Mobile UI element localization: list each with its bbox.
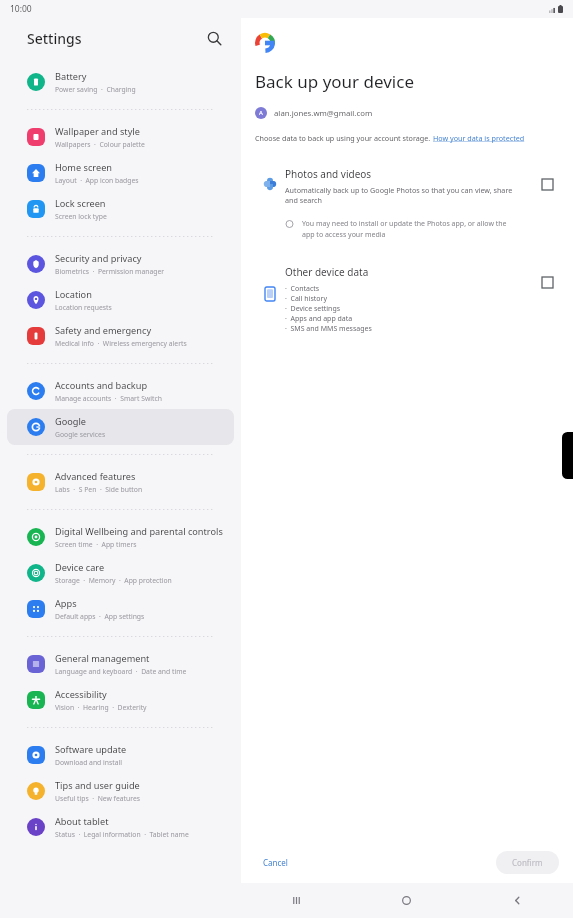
staticText: Choose data to back up using your accoun…	[255, 133, 433, 143]
staticText: Default apps · App settings	[55, 612, 145, 621]
staticText: Automatically back up to Google Photos s…	[285, 185, 525, 205]
button[interactable]: Lock screen	[7, 191, 234, 227]
staticText: Google	[55, 415, 87, 428]
button[interactable]: Confirm	[496, 851, 559, 874]
button[interactable]: General management	[7, 646, 234, 682]
button[interactable]: Google	[7, 409, 234, 445]
staticText: Location	[55, 288, 92, 301]
staticText: Digital Wellbeing and parental controls	[55, 525, 223, 538]
staticText: Screen lock type	[55, 212, 107, 221]
staticText: Biometrics · Permission manager	[55, 267, 165, 276]
staticText: Home screen	[55, 161, 112, 174]
staticText: Medical info · Wireless emergency alerts	[55, 339, 187, 348]
button[interactable]: Checkbox	[535, 270, 559, 294]
staticText: Manage accounts · Smart Switch	[55, 394, 162, 403]
staticText: · Call history	[285, 294, 328, 304]
staticText: Battery	[55, 70, 87, 83]
staticText: A	[259, 109, 263, 117]
button[interactable]: Recents	[241, 883, 351, 918]
staticText: Accounts and backup	[55, 379, 148, 392]
staticText: 10:00	[10, 3, 32, 15]
staticText: Software update	[55, 743, 127, 756]
staticText: Security and privacy	[55, 252, 142, 265]
button[interactable]: Checkbox	[535, 172, 559, 196]
staticText: Accessibility	[55, 688, 107, 701]
staticText: Settings	[27, 29, 82, 48]
staticText: Other device data	[285, 265, 369, 279]
staticText: Wallpapers · Colour palette	[55, 140, 145, 149]
staticText: · SMS and MMS messages	[285, 324, 372, 334]
staticText: alan.jones.wm@gmail.com	[274, 108, 373, 119]
button[interactable]: Advanced features	[7, 464, 234, 500]
staticText: Useful tips · New features	[55, 794, 141, 803]
staticText: Download and install	[55, 758, 123, 767]
staticText: Labs · S Pen · Side button	[55, 485, 143, 494]
staticText: Device care	[55, 561, 105, 574]
button[interactable]: Safety and emergency	[7, 318, 234, 354]
staticText: About tablet	[55, 815, 109, 828]
staticText: · Contacts	[285, 284, 320, 294]
staticText: Vision · Hearing · Dexterity	[55, 703, 147, 712]
button[interactable]: Battery	[7, 64, 234, 100]
button[interactable]: Search	[201, 25, 227, 51]
staticText: Screen time · App timers	[55, 540, 137, 549]
staticText: Back up your device	[255, 70, 415, 93]
staticText: Location requests	[55, 303, 112, 312]
button[interactable]: Wallpaper and style	[7, 119, 234, 155]
staticText: Wallpaper and style	[55, 125, 140, 138]
button[interactable]: Tips and user guide	[7, 773, 234, 809]
staticText: · Apps and app data	[285, 314, 353, 324]
staticText: Photos and videos	[285, 167, 372, 181]
button[interactable]: Digital Wellbeing and parental controls	[7, 519, 234, 555]
button[interactable]: Accounts and backup	[7, 373, 234, 409]
staticText: · Device settings	[285, 304, 341, 314]
staticText: Google services	[55, 430, 106, 439]
button[interactable]: Security and privacy	[7, 246, 234, 282]
button[interactable]: Back	[462, 883, 573, 918]
staticText: Cancel	[263, 857, 288, 868]
button[interactable]: Apps	[7, 591, 234, 627]
button[interactable]: Location	[7, 282, 234, 318]
staticText: Storage · Memory · App protection	[55, 576, 172, 585]
staticText: Advanced features	[55, 470, 136, 483]
staticText: Language and keyboard · Date and time	[55, 667, 187, 676]
staticText: General management	[55, 652, 150, 665]
staticText: Confirm	[512, 857, 543, 868]
staticText: Power saving · Charging	[55, 85, 136, 94]
staticText: Layout · App icon badges	[55, 176, 139, 185]
staticText: Status · Legal information · Tablet name	[55, 830, 189, 839]
button[interactable]: About tablet	[7, 809, 234, 845]
button[interactable]: How your data is protected	[433, 133, 525, 143]
button[interactable]: Software update	[7, 737, 234, 773]
button[interactable]: Cancel	[253, 852, 298, 873]
staticText: You may need to install or update the Ph…	[302, 219, 513, 239]
staticText: Apps	[55, 597, 77, 610]
button[interactable]: Accessibility	[7, 682, 234, 718]
staticText: Safety and emergency	[55, 324, 152, 337]
button[interactable]: Device care	[7, 555, 234, 591]
staticText: Lock screen	[55, 197, 106, 210]
button[interactable]: Home	[351, 883, 462, 918]
button[interactable]: Home screen	[7, 155, 234, 191]
staticText: Tips and user guide	[55, 779, 140, 792]
